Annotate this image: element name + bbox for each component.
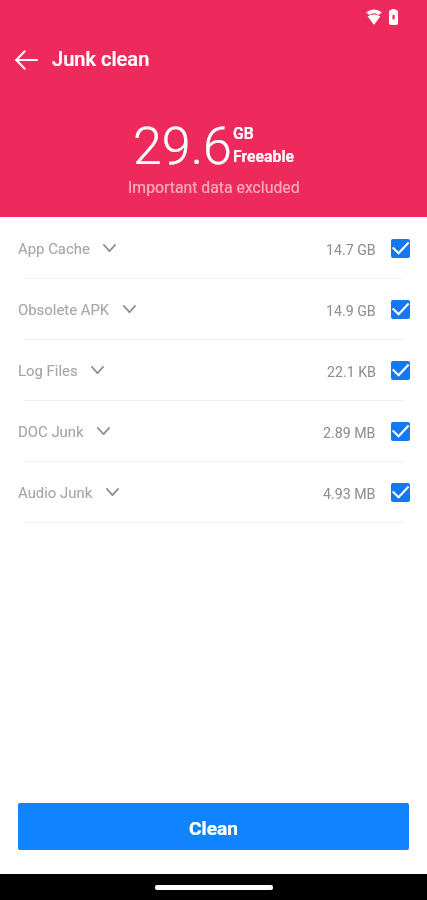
staticText: 14.7 GB: [326, 242, 376, 259]
staticText: Log Files: [18, 362, 78, 379]
staticText: 2.89 MB: [323, 425, 376, 442]
staticText: Clean: [189, 817, 239, 840]
button[interactable]: Selected: [391, 361, 410, 380]
staticText: 22.1 KB: [327, 364, 376, 381]
button[interactable]: Obsolete APK: [0, 279, 427, 339]
staticText: Junk clean: [52, 47, 150, 71]
staticText: App Cache: [18, 240, 90, 257]
button[interactable]: App Cache: [0, 218, 427, 278]
staticText: 14.9 GB: [326, 303, 376, 320]
button[interactable]: Selected: [391, 239, 410, 258]
staticText: Audio Junk: [18, 484, 93, 501]
button[interactable]: Audio Junk: [0, 462, 427, 522]
button[interactable]: Selected: [391, 300, 410, 319]
button[interactable]: Selected: [391, 422, 410, 441]
staticText: 29.6: [133, 116, 232, 177]
staticText: DOC Junk: [18, 423, 84, 440]
staticText: Important data excluded: [128, 178, 300, 197]
staticText: 4.93 MB: [323, 486, 376, 503]
button[interactable]: DOC Junk: [0, 401, 427, 461]
button[interactable]: Selected: [391, 483, 410, 502]
button[interactable]: Log Files: [0, 340, 427, 400]
staticText: GB: [233, 124, 254, 143]
staticText: Freeable: [233, 147, 294, 166]
staticText: Obsolete APK: [18, 301, 110, 318]
button[interactable]: Clean: [18, 803, 409, 850]
button[interactable]: Back: [4, 42, 48, 78]
